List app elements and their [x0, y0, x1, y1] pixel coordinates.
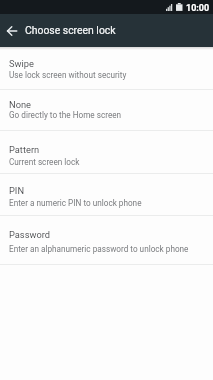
staticText: Current screen lock	[9, 157, 80, 167]
staticText: Pattern	[9, 144, 40, 155]
staticText: Enter a numeric PIN to unlock phone	[9, 198, 142, 208]
button[interactable]: PIN	[0, 173, 213, 215]
button[interactable]: Password	[0, 215, 213, 264]
staticText: Enter an alphanumeric password to unlock…	[9, 244, 189, 254]
button[interactable]: Pattern	[0, 130, 213, 173]
staticText: Swipe	[9, 58, 34, 69]
button[interactable]: Swipe	[0, 47, 213, 89]
button[interactable]	[3, 22, 21, 40]
staticText: 10:00	[186, 3, 210, 14]
staticText: Use lock screen without security	[9, 70, 127, 80]
button[interactable]: None	[0, 89, 213, 130]
staticText: Password	[9, 229, 51, 240]
staticText: Choose screen lock	[25, 24, 116, 36]
staticText: Go directly to the Home screen	[9, 110, 122, 120]
staticText: None	[9, 99, 31, 110]
staticText: PIN	[9, 185, 25, 196]
